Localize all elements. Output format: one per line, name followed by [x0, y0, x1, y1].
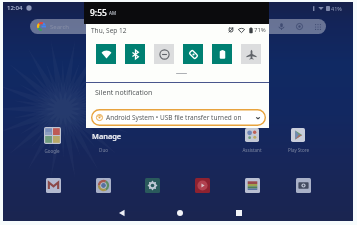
staticText: 9:55: [90, 7, 107, 19]
staticText: AM: [109, 10, 117, 16]
button[interactable]: Airplane mode: [241, 44, 261, 64]
staticText: 41%: [331, 5, 342, 12]
button[interactable]: Photos: [242, 175, 262, 195]
button[interactable]: Assistant: [236, 128, 268, 153]
staticText: Assistant: [242, 147, 262, 153]
staticText: Manage: [92, 131, 122, 141]
button[interactable]: Wi-Fi: [96, 44, 116, 64]
button[interactable]: Battery Saver: [212, 44, 232, 64]
button[interactable]: Camera: [293, 175, 313, 195]
button[interactable]: Settings: [142, 175, 162, 195]
staticText: Play Store: [288, 147, 309, 153]
button[interactable]: Home: [155, 203, 205, 222]
button[interactable]: Google Lens: [295, 22, 304, 31]
button[interactable]: Gmail: [43, 175, 63, 195]
button[interactable]: Recents: [214, 203, 264, 222]
button[interactable]: Do Not Disturb: [154, 44, 174, 64]
button[interactable]: Android System • USB file transfer turne…: [91, 109, 266, 126]
button[interactable]: Auto rotate: [183, 44, 203, 64]
button[interactable]: Search: [30, 19, 326, 34]
staticText: Android System • USB file transfer turne…: [106, 113, 242, 122]
staticText: 12:04: [7, 4, 23, 12]
button[interactable]: Voice search: [277, 22, 286, 31]
button[interactable]: Bluetooth: [125, 44, 145, 64]
staticText: Silent notification: [95, 88, 153, 98]
staticText: 71%: [254, 26, 266, 34]
button[interactable]: Google: [36, 127, 68, 154]
staticText: Google: [44, 148, 60, 154]
button[interactable]: Back: [97, 203, 147, 222]
button[interactable]: All apps: [314, 23, 322, 31]
button[interactable]: Chrome: [93, 175, 113, 195]
button[interactable]: Play Store: [282, 128, 314, 153]
staticText: Search: [50, 23, 69, 31]
staticText: Duo: [99, 147, 108, 153]
button[interactable]: YouTube: [192, 175, 212, 195]
button[interactable]: Duo: [87, 128, 119, 153]
staticText: Thu, Sep 12: [91, 26, 127, 35]
